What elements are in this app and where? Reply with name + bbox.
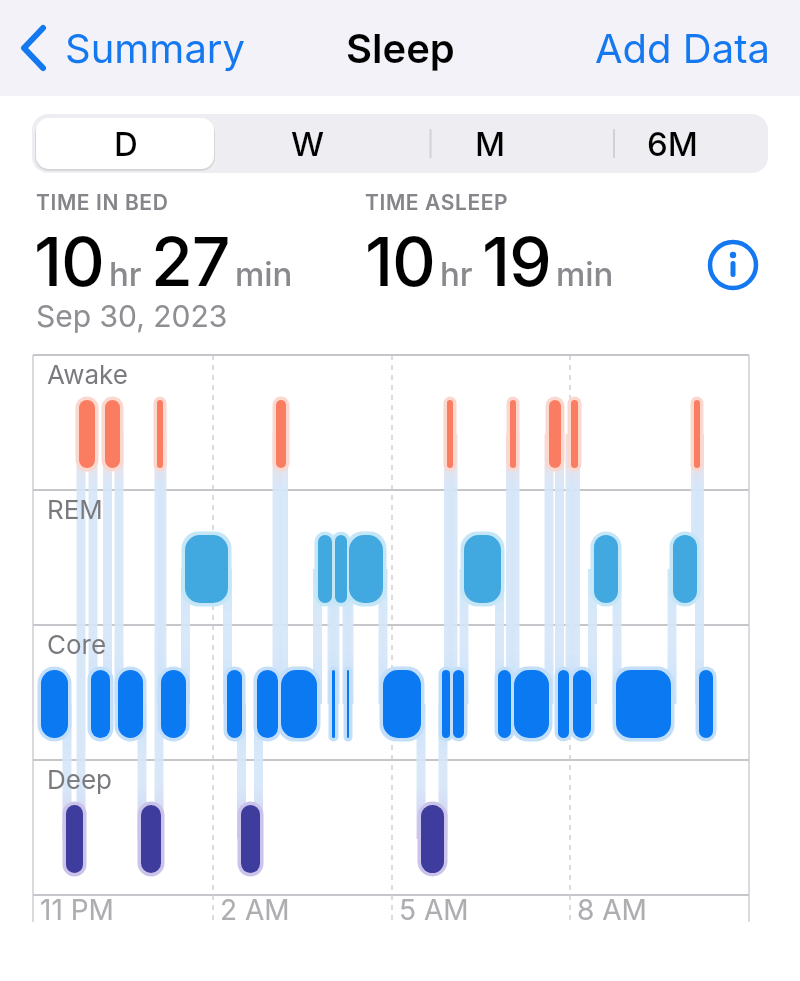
button[interactable]: Summary (20, 24, 246, 72)
staticText: Sleep (346, 24, 455, 72)
staticText: 5 AM (399, 893, 469, 927)
staticText: 19 (482, 220, 551, 302)
staticText: Summary (65, 24, 246, 72)
staticText: Awake (47, 359, 128, 390)
staticText: REM (47, 494, 103, 525)
staticText: D (114, 124, 138, 164)
staticText: TIME IN BED (36, 190, 169, 215)
staticText: Core (47, 629, 107, 660)
button[interactable]: W (218, 114, 398, 173)
button[interactable]: Add Data (595, 24, 770, 72)
staticText: 10 (34, 220, 104, 302)
staticText: 27 (151, 220, 230, 302)
staticText: 10 (365, 220, 435, 302)
staticText: min (235, 254, 293, 294)
staticText: min (556, 254, 614, 294)
staticText: Add Data (595, 24, 770, 72)
button[interactable]: D (36, 114, 216, 173)
button[interactable] (36, 118, 214, 169)
staticText: 11 PM (40, 893, 114, 927)
staticText: hr (109, 254, 142, 294)
staticText: Sep 30, 2023 (36, 298, 228, 334)
staticText: W (291, 124, 325, 164)
staticText: M (475, 124, 506, 164)
staticText: 6M (647, 124, 698, 164)
staticText: 2 AM (220, 893, 290, 927)
button[interactable]: 6M (582, 114, 762, 173)
button[interactable]: M (400, 114, 580, 173)
button[interactable] (706, 238, 760, 292)
staticText: 8 AM (577, 893, 647, 927)
staticText: TIME ASLEEP (365, 190, 509, 215)
staticText: hr (440, 254, 473, 294)
staticText: Deep (47, 764, 112, 795)
